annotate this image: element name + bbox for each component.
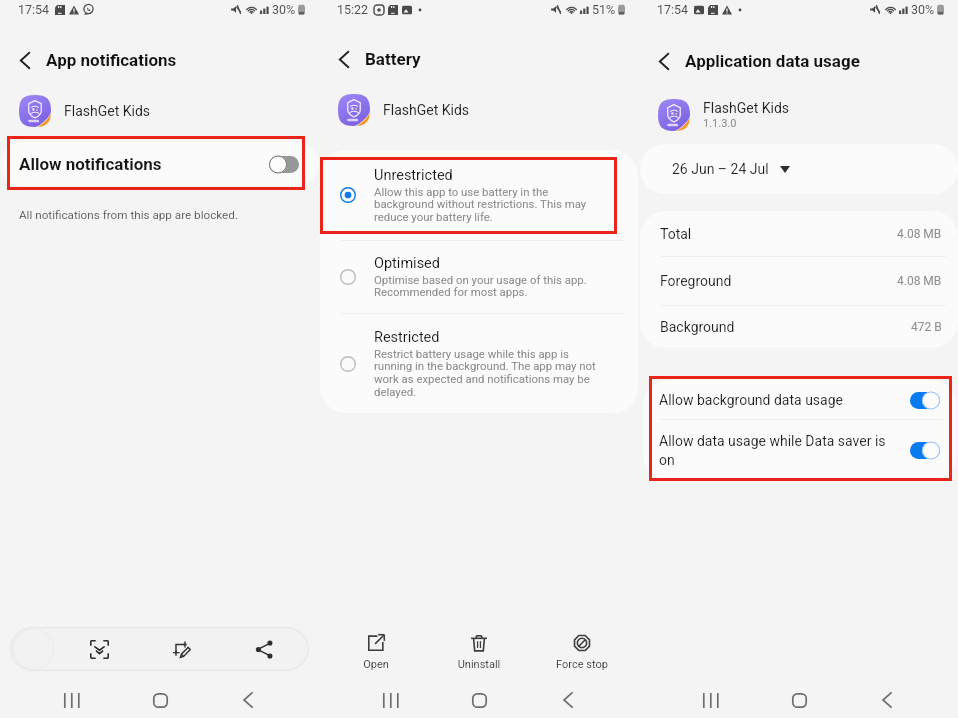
button[interactable]: Force stop — [536, 634, 628, 671]
button[interactable]: Home — [781, 682, 817, 718]
button[interactable]: Select — [336, 265, 360, 289]
button[interactable]: Home — [142, 682, 178, 718]
button[interactable]: Allow data usage while Data saver is on — [643, 420, 957, 480]
button[interactable]: Select — [320, 314, 638, 413]
staticText: 51% — [592, 2, 616, 17]
staticText: Unrestricted — [374, 167, 453, 184]
staticText: 30% — [272, 2, 296, 17]
button[interactable]: Back — [869, 682, 905, 718]
button[interactable]: Foreground — [640, 257, 958, 305]
button[interactable]: Select — [336, 352, 360, 376]
button[interactable]: Select — [320, 241, 638, 313]
button[interactable]: 26 Jun – 24 Jul — [640, 144, 958, 194]
staticText: 26 Jun – 24 Jul — [672, 161, 769, 177]
staticText: Allow background data usage — [659, 392, 907, 408]
button[interactable]: Back — [550, 682, 586, 718]
staticText: 17:54 — [18, 2, 50, 17]
staticText: Allow notifications — [19, 154, 162, 174]
staticText: Total — [660, 226, 692, 242]
staticText: Open — [330, 658, 422, 671]
staticText: App notifications — [46, 50, 177, 70]
button[interactable]: Allow background data usage — [643, 380, 957, 419]
staticText: FlashGet Kids — [383, 102, 470, 118]
staticText: 4.08 MB — [897, 274, 942, 288]
button[interactable]: Switch on — [907, 438, 943, 462]
staticText: FlashGet Kids — [703, 100, 790, 116]
button[interactable]: Home — [461, 682, 497, 718]
button[interactable]: Open — [330, 634, 422, 671]
button[interactable]: Scroll capture — [84, 634, 114, 664]
button[interactable]: Edit screenshot — [167, 634, 197, 664]
button[interactable]: Switch off — [266, 152, 302, 176]
button[interactable]: Recent apps — [53, 682, 89, 718]
staticText: Optimise based on your usage of this app… — [374, 273, 587, 299]
staticText: 4.08 MB — [897, 227, 942, 241]
button[interactable]: Total — [640, 211, 958, 256]
staticText: Foreground — [660, 273, 732, 289]
staticText: Battery — [365, 49, 421, 69]
staticText: 1.1.3.0 — [703, 117, 737, 130]
staticText: Allow this app to use battery in the bac… — [374, 185, 587, 224]
staticText: FlashGet Kids — [64, 103, 151, 119]
button[interactable]: Select — [336, 183, 360, 207]
button[interactable]: Select — [320, 150, 638, 240]
staticText: All notifications from this app are bloc… — [19, 208, 238, 222]
staticText: Application data usage — [685, 51, 860, 71]
button[interactable]: Uninstall — [433, 634, 525, 671]
staticText: Uninstall — [433, 658, 525, 671]
button[interactable]: Share — [249, 634, 279, 664]
button[interactable]: Back — [230, 682, 266, 718]
button[interactable]: Recent apps — [692, 682, 728, 718]
button[interactable]: Background — [640, 306, 958, 348]
button[interactable]: Navigate up — [650, 47, 678, 75]
button[interactable]: Recent apps — [372, 682, 408, 718]
staticText: Allow data usage while Data saver is on — [659, 433, 907, 468]
staticText: 15:22 — [337, 2, 369, 17]
staticText: Restricted — [374, 329, 440, 346]
button[interactable]: Navigate up — [330, 45, 358, 73]
button[interactable]: Allow notifications — [0, 142, 319, 186]
staticText: Background — [660, 319, 735, 335]
button[interactable]: Switch on — [907, 388, 943, 412]
staticText: Optimised — [374, 255, 440, 272]
staticText: 30% — [911, 2, 935, 17]
staticText: 17:54 — [657, 2, 689, 17]
staticText: 472 B — [911, 320, 942, 334]
staticText: Force stop — [536, 658, 628, 671]
button[interactable]: Navigate up — [11, 46, 39, 74]
staticText: Restrict battery usage while this app is… — [374, 347, 596, 399]
